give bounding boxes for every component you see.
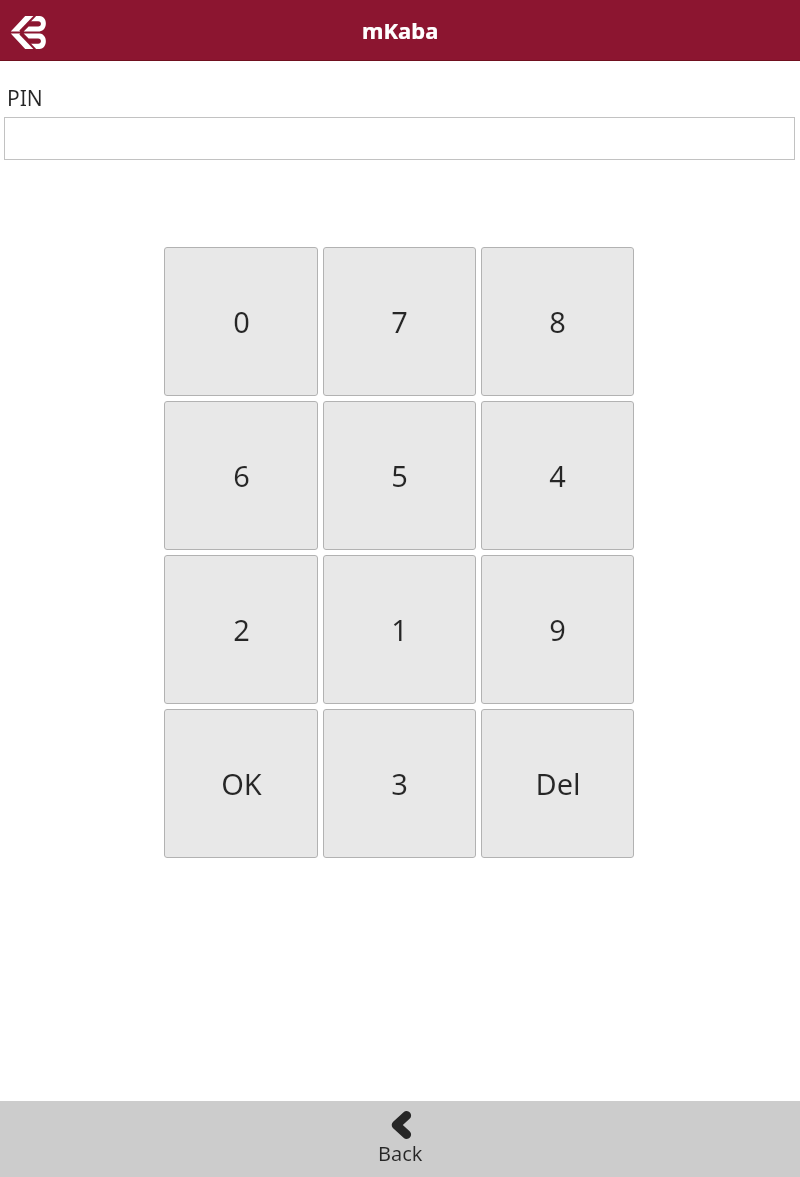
staticText: 1 — [391, 610, 408, 649]
button[interactable]: Back — [350, 1107, 451, 1170]
staticText: 0 — [233, 302, 250, 341]
button[interactable]: 4 — [481, 401, 634, 550]
staticText: 4 — [549, 456, 566, 495]
staticText: Del — [535, 764, 581, 803]
button[interactable]: 7 — [323, 247, 476, 396]
button[interactable]: 2 — [164, 555, 318, 704]
button[interactable]: 8 — [481, 247, 634, 396]
staticText: mKaba — [362, 15, 439, 45]
button[interactable]: Home — [0, 0, 56, 61]
button[interactable]: Del — [481, 709, 634, 858]
staticText: 6 — [233, 456, 250, 495]
staticText: 2 — [233, 610, 250, 649]
button[interactable]: 5 — [323, 401, 476, 550]
button[interactable]: 6 — [164, 401, 318, 550]
staticText: 9 — [549, 610, 566, 649]
staticText: PIN — [7, 84, 43, 113]
button[interactable]: 0 — [164, 247, 318, 396]
button[interactable] — [4, 117, 795, 160]
staticText: 5 — [391, 456, 408, 495]
staticText: 8 — [549, 302, 566, 341]
staticText: 7 — [391, 302, 408, 341]
staticText: Back — [378, 1140, 423, 1167]
button[interactable]: 9 — [481, 555, 634, 704]
staticText: OK — [221, 764, 262, 803]
button[interactable]: 1 — [323, 555, 476, 704]
staticText: 3 — [391, 764, 408, 803]
button[interactable]: OK — [164, 709, 318, 858]
button[interactable]: 3 — [323, 709, 476, 858]
